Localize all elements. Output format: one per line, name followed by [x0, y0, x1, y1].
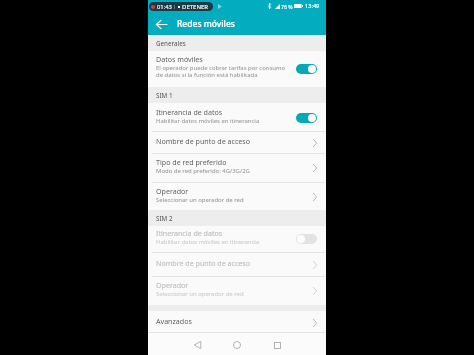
- staticText: SIM 2: [156, 214, 173, 222]
- staticText: Nombre de punto de acceso: [156, 136, 251, 146]
- staticText: Operador: [156, 186, 189, 196]
- staticText: Generales: [156, 39, 186, 47]
- button[interactable]: Nombre de punto de acceso: [148, 132, 326, 154]
- staticText: DETENER: [182, 3, 209, 11]
- button[interactable]: Datos móviles: [148, 51, 326, 87]
- button[interactable]: Back: [148, 13, 174, 35]
- staticText: Itinerancia de datos: [156, 107, 223, 117]
- staticText: Redes móviles: [177, 18, 235, 30]
- staticText: El operador puede cobrar tarifas por con…: [156, 64, 290, 79]
- staticText: Habilitar datos móviles en itinerancia: [156, 117, 260, 125]
- staticText: Operador: [156, 280, 189, 290]
- button[interactable]: Back: [187, 335, 207, 355]
- staticText: Itinerancia de datos: [156, 228, 223, 238]
- staticText: 13:49: [305, 2, 320, 10]
- button[interactable]: Operador: [148, 183, 326, 210]
- staticText: Seleccionar un operador de red: [156, 290, 244, 298]
- button[interactable]: Nombre de punto de acceso: [148, 253, 326, 277]
- button[interactable]: Operador: [148, 277, 326, 305]
- button[interactable]: Avanzados: [148, 311, 326, 334]
- button[interactable]: Tipo de red preferido: [148, 153, 326, 182]
- staticText: Modo de red preferido: 4G/3G/2G: [156, 167, 250, 175]
- button[interactable]: Home: [227, 335, 247, 355]
- staticText: Seleccionar un operador de red: [156, 196, 244, 204]
- staticText: Avanzados: [156, 316, 192, 326]
- button[interactable]: Itinerancia de datos: [148, 103, 326, 132]
- button[interactable]: Itinerancia de datos: [148, 225, 326, 253]
- staticText: Datos móviles: [156, 54, 203, 64]
- staticText: 76 %: [281, 3, 293, 10]
- staticText: SIM 1: [156, 91, 173, 99]
- staticText: 01:43: [157, 3, 172, 11]
- staticText: Habilitar datos móviles en itinerancia: [156, 238, 260, 246]
- staticText: Nombre de punto de acceso: [156, 258, 251, 268]
- staticText: Tipo de red preferido: [156, 157, 227, 167]
- button[interactable]: Recent apps: [267, 335, 287, 355]
